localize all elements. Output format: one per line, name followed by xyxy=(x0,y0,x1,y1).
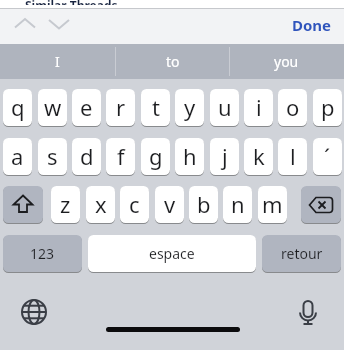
button[interactable]: r xyxy=(106,89,135,126)
button[interactable]: y xyxy=(175,89,204,126)
button[interactable] xyxy=(16,294,52,330)
staticText: Similar Threads xyxy=(25,0,118,5)
staticText: n xyxy=(231,189,245,219)
button[interactable]: u xyxy=(210,89,239,126)
button[interactable]: h xyxy=(175,138,204,175)
staticText: i xyxy=(256,92,262,122)
button[interactable] xyxy=(45,13,73,35)
button[interactable]: I xyxy=(0,44,115,79)
button[interactable]: s xyxy=(38,138,67,175)
button[interactable]: b xyxy=(189,186,218,223)
button[interactable]: n xyxy=(223,186,252,223)
button[interactable]: f xyxy=(106,138,135,175)
button[interactable]: a xyxy=(3,138,32,175)
staticText: h xyxy=(183,141,197,171)
staticText: q xyxy=(11,92,25,122)
staticText: Done xyxy=(292,15,332,35)
button[interactable]: i xyxy=(244,89,273,126)
button[interactable] xyxy=(290,294,326,330)
button[interactable]: e xyxy=(72,89,101,126)
staticText: l xyxy=(290,141,296,171)
staticText: j xyxy=(222,141,228,171)
button[interactable]: t xyxy=(141,89,170,126)
staticText: d xyxy=(80,141,94,171)
button[interactable]: m xyxy=(258,186,287,223)
staticText: m xyxy=(262,189,283,219)
staticText: a xyxy=(11,141,24,171)
staticText: o xyxy=(286,92,300,122)
button[interactable]: 123 xyxy=(3,235,82,272)
staticText: t xyxy=(152,92,160,122)
button[interactable]: g xyxy=(141,138,170,175)
button[interactable]: c xyxy=(120,186,149,223)
staticText: r xyxy=(116,92,126,122)
button[interactable]: d xyxy=(72,138,101,175)
button[interactable]: v xyxy=(155,186,184,223)
staticText: to xyxy=(166,52,180,71)
button[interactable]: q xyxy=(3,89,32,126)
staticText: b xyxy=(197,189,211,219)
staticText: retour xyxy=(281,244,323,263)
staticText: v xyxy=(164,189,176,219)
button[interactable]: j xyxy=(210,138,239,175)
staticText: y xyxy=(184,92,196,122)
button[interactable]: k xyxy=(244,138,273,175)
staticText: s xyxy=(47,141,58,171)
button[interactable]: to xyxy=(115,44,230,79)
button[interactable]: ´ xyxy=(313,138,342,175)
button[interactable]: x xyxy=(86,186,115,223)
staticText: u xyxy=(218,92,232,122)
staticText: x xyxy=(95,189,107,219)
button[interactable] xyxy=(301,186,341,223)
button[interactable] xyxy=(11,13,39,35)
staticText: w xyxy=(44,92,62,122)
button[interactable]: w xyxy=(38,89,67,126)
button[interactable]: z xyxy=(51,186,80,223)
button[interactable]: l xyxy=(278,138,307,175)
staticText: espace xyxy=(149,244,195,263)
staticText: f xyxy=(117,141,125,171)
staticText: p xyxy=(321,92,335,122)
button[interactable]: Done xyxy=(288,13,336,37)
staticText: 123 xyxy=(30,244,55,263)
staticText: ´ xyxy=(324,141,331,171)
button[interactable]: espace xyxy=(88,235,256,272)
button[interactable]: p xyxy=(313,89,342,126)
button[interactable]: o xyxy=(278,89,307,126)
staticText: I xyxy=(55,52,60,71)
button[interactable]: you xyxy=(229,44,344,79)
staticText: e xyxy=(80,92,93,122)
staticText: you xyxy=(274,52,299,71)
staticText: c xyxy=(129,189,140,219)
button[interactable]: retour xyxy=(262,235,341,272)
staticText: z xyxy=(60,189,71,219)
staticText: k xyxy=(253,141,265,171)
button[interactable] xyxy=(3,186,43,223)
staticText: g xyxy=(149,141,163,171)
